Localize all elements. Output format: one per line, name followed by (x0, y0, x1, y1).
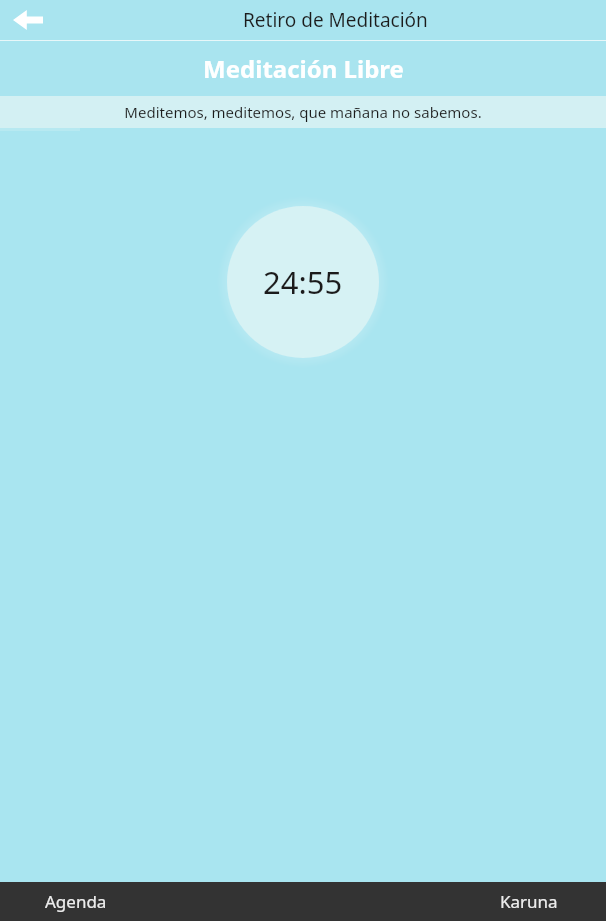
staticText: Retiro de Meditación (243, 7, 428, 33)
staticText: Meditación Libre (203, 52, 404, 85)
staticText: Agenda (45, 890, 107, 913)
button[interactable]: Agenda (0, 882, 119, 921)
button[interactable]: Karuna (488, 882, 606, 921)
button[interactable]: 24:55 (227, 206, 379, 358)
staticText: 24:55 (263, 261, 343, 303)
staticText: Meditemos, meditemos, que mañana no sabe… (124, 102, 482, 122)
staticText: Karuna (500, 890, 558, 913)
button[interactable]: Back (0, 0, 56, 40)
